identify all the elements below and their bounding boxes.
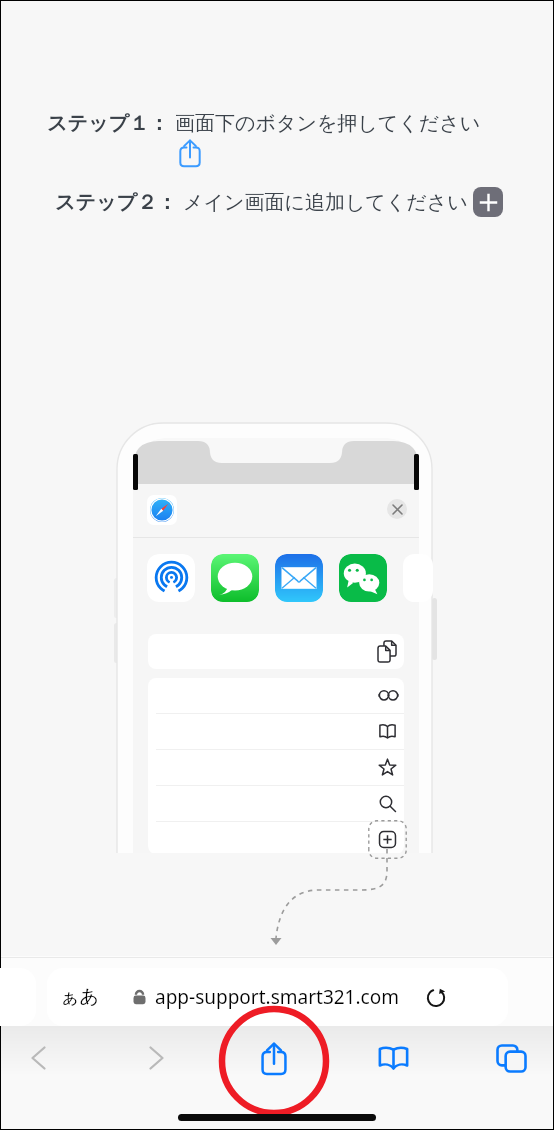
button[interactable]: Close (387, 499, 407, 519)
button[interactable]: Tabs (483, 1030, 539, 1086)
button[interactable]: Forward (128, 1030, 184, 1086)
button[interactable]: ぁあ (47, 968, 508, 1026)
staticText: app-support.smart321.com (155, 984, 399, 1010)
button[interactable] (147, 554, 195, 602)
button[interactable] (148, 822, 404, 853)
button[interactable] (148, 634, 404, 669)
button[interactable]: Share (246, 1030, 302, 1086)
button[interactable] (211, 554, 259, 602)
button[interactable] (147, 495, 177, 525)
button[interactable]: Back (10, 1030, 66, 1086)
staticText: メイン画面に追加してください (183, 190, 468, 215)
button[interactable]: Add to Home Screen (473, 187, 503, 217)
staticText: ステップ２： (55, 190, 177, 215)
button[interactable] (339, 554, 387, 602)
button[interactable] (148, 714, 404, 749)
button[interactable]: Bookmarks (365, 1030, 421, 1086)
button[interactable] (275, 554, 323, 602)
button[interactable] (148, 678, 404, 713)
button[interactable] (148, 786, 404, 821)
button[interactable] (148, 750, 404, 785)
staticText: ぁあ (60, 985, 99, 1009)
staticText: ステップ１： (47, 111, 169, 136)
staticText: 画面下のボタンを押してください (175, 111, 481, 136)
